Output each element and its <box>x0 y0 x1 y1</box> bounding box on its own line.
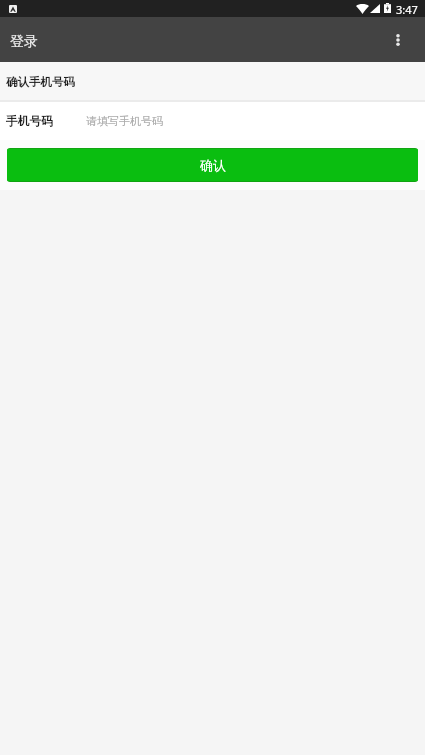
button[interactable]: More options <box>376 17 420 62</box>
staticText: 确认手机号码 <box>6 75 75 89</box>
staticText: 手机号码 <box>6 114 53 129</box>
staticText: 登录 <box>10 33 38 51</box>
staticText: 请填写手机号码 <box>86 114 163 128</box>
staticText: 确认 <box>200 157 226 173</box>
button[interactable]: 手机号码 <box>0 102 425 140</box>
staticText: 3:47 <box>396 2 418 17</box>
button[interactable]: 确认 <box>7 148 418 182</box>
